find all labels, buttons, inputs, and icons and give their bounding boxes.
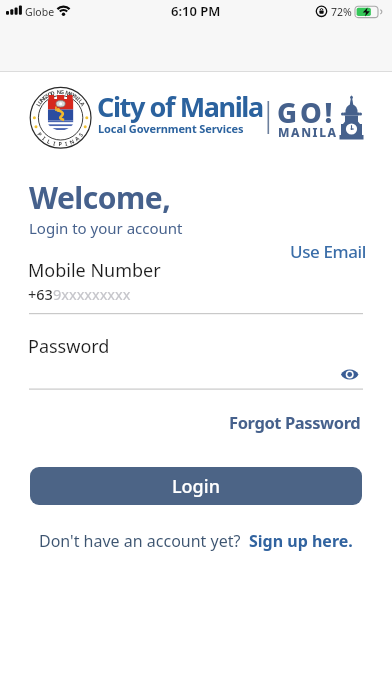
button[interactable]: Sign up here. <box>249 530 353 552</box>
button[interactable]: Use Email <box>290 240 366 263</box>
button[interactable]: +63 <box>28 284 131 304</box>
staticText: Mobile Number <box>28 258 161 283</box>
staticText: +63 <box>28 284 53 304</box>
staticText: Password <box>28 334 110 359</box>
staticText: Globe <box>25 5 55 19</box>
staticText: Local Government Services <box>98 121 244 136</box>
staticText: GO! <box>277 94 336 131</box>
staticText: Don't have an account yet? <box>39 530 249 552</box>
staticText: Login to your account <box>29 218 183 238</box>
staticText: Login <box>172 474 220 499</box>
staticText: Forgot Password <box>229 411 361 433</box>
staticText: City of Manila <box>97 88 263 125</box>
staticText: 72% <box>331 5 352 19</box>
staticText: Sign up here. <box>249 530 353 552</box>
button[interactable] <box>334 363 364 387</box>
staticText: MANILA <box>278 124 338 140</box>
button[interactable]: Forgot Password <box>229 411 361 433</box>
staticText: Use Email <box>290 240 366 263</box>
staticText: 6:10 PM <box>171 2 221 20</box>
button[interactable]: Login <box>30 467 362 505</box>
staticText: Welcome, <box>29 177 171 218</box>
staticText: 9xxxxxxxxx <box>53 284 131 304</box>
